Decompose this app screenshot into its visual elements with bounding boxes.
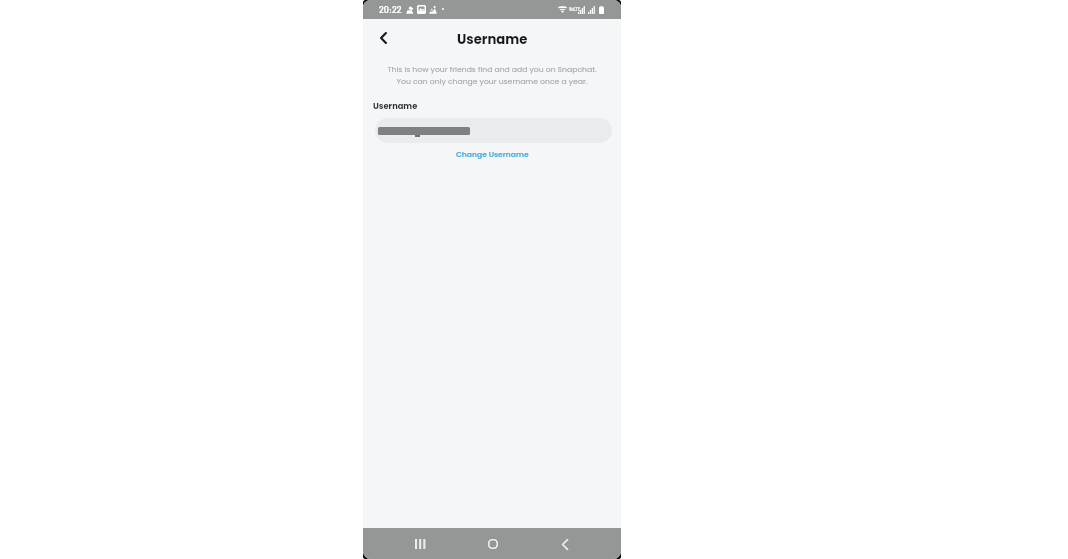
button[interactable]: Recent apps xyxy=(407,531,433,557)
staticText: Change Username xyxy=(456,149,529,160)
button[interactable]: Change Username xyxy=(446,146,539,163)
staticText: 20:22 xyxy=(379,3,402,15)
button[interactable]: Home xyxy=(480,531,506,557)
button[interactable]: Back xyxy=(552,531,578,557)
staticText: This is how your friends find and add yo… xyxy=(371,64,613,86)
staticText: Username xyxy=(457,30,528,48)
button[interactable] xyxy=(375,118,612,143)
staticText: Username xyxy=(373,100,418,112)
button[interactable]: Back xyxy=(371,26,395,50)
staticText: VoLTE xyxy=(569,6,581,12)
